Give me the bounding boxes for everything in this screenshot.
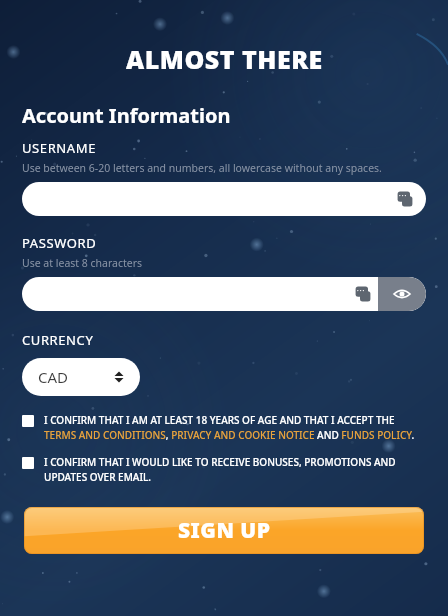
staticText: I CONFIRM THAT I AM AT LEAST 18 YEARS OF… xyxy=(44,413,426,442)
staticText: SIGN UP xyxy=(178,516,271,545)
staticText: PASSWORD xyxy=(22,234,97,252)
staticText: I CONFIRM THAT I WOULD LIKE TO RECEIVE B… xyxy=(44,455,426,484)
staticText: CAD xyxy=(38,367,69,387)
button[interactable]: SIGN UP xyxy=(24,507,424,554)
button[interactable]: Show password xyxy=(22,277,426,311)
button[interactable]: I CONFIRM THAT I WOULD LIKE TO RECEIVE B… xyxy=(22,455,426,484)
staticText: Use at least 8 characters xyxy=(22,256,143,270)
button[interactable] xyxy=(22,182,426,216)
staticText: Use between 6-20 letters and numbers, al… xyxy=(22,161,382,175)
button[interactable]: I CONFIRM THAT I AM AT LEAST 18 YEARS OF… xyxy=(22,413,426,442)
staticText: Account Information xyxy=(22,102,231,129)
button[interactable]: Show password xyxy=(378,277,426,311)
staticText: ALMOST THERE xyxy=(126,42,323,76)
staticText: CURRENCY xyxy=(22,331,94,349)
staticText: USERNAME xyxy=(22,139,96,157)
button[interactable]: CAD xyxy=(22,358,140,396)
